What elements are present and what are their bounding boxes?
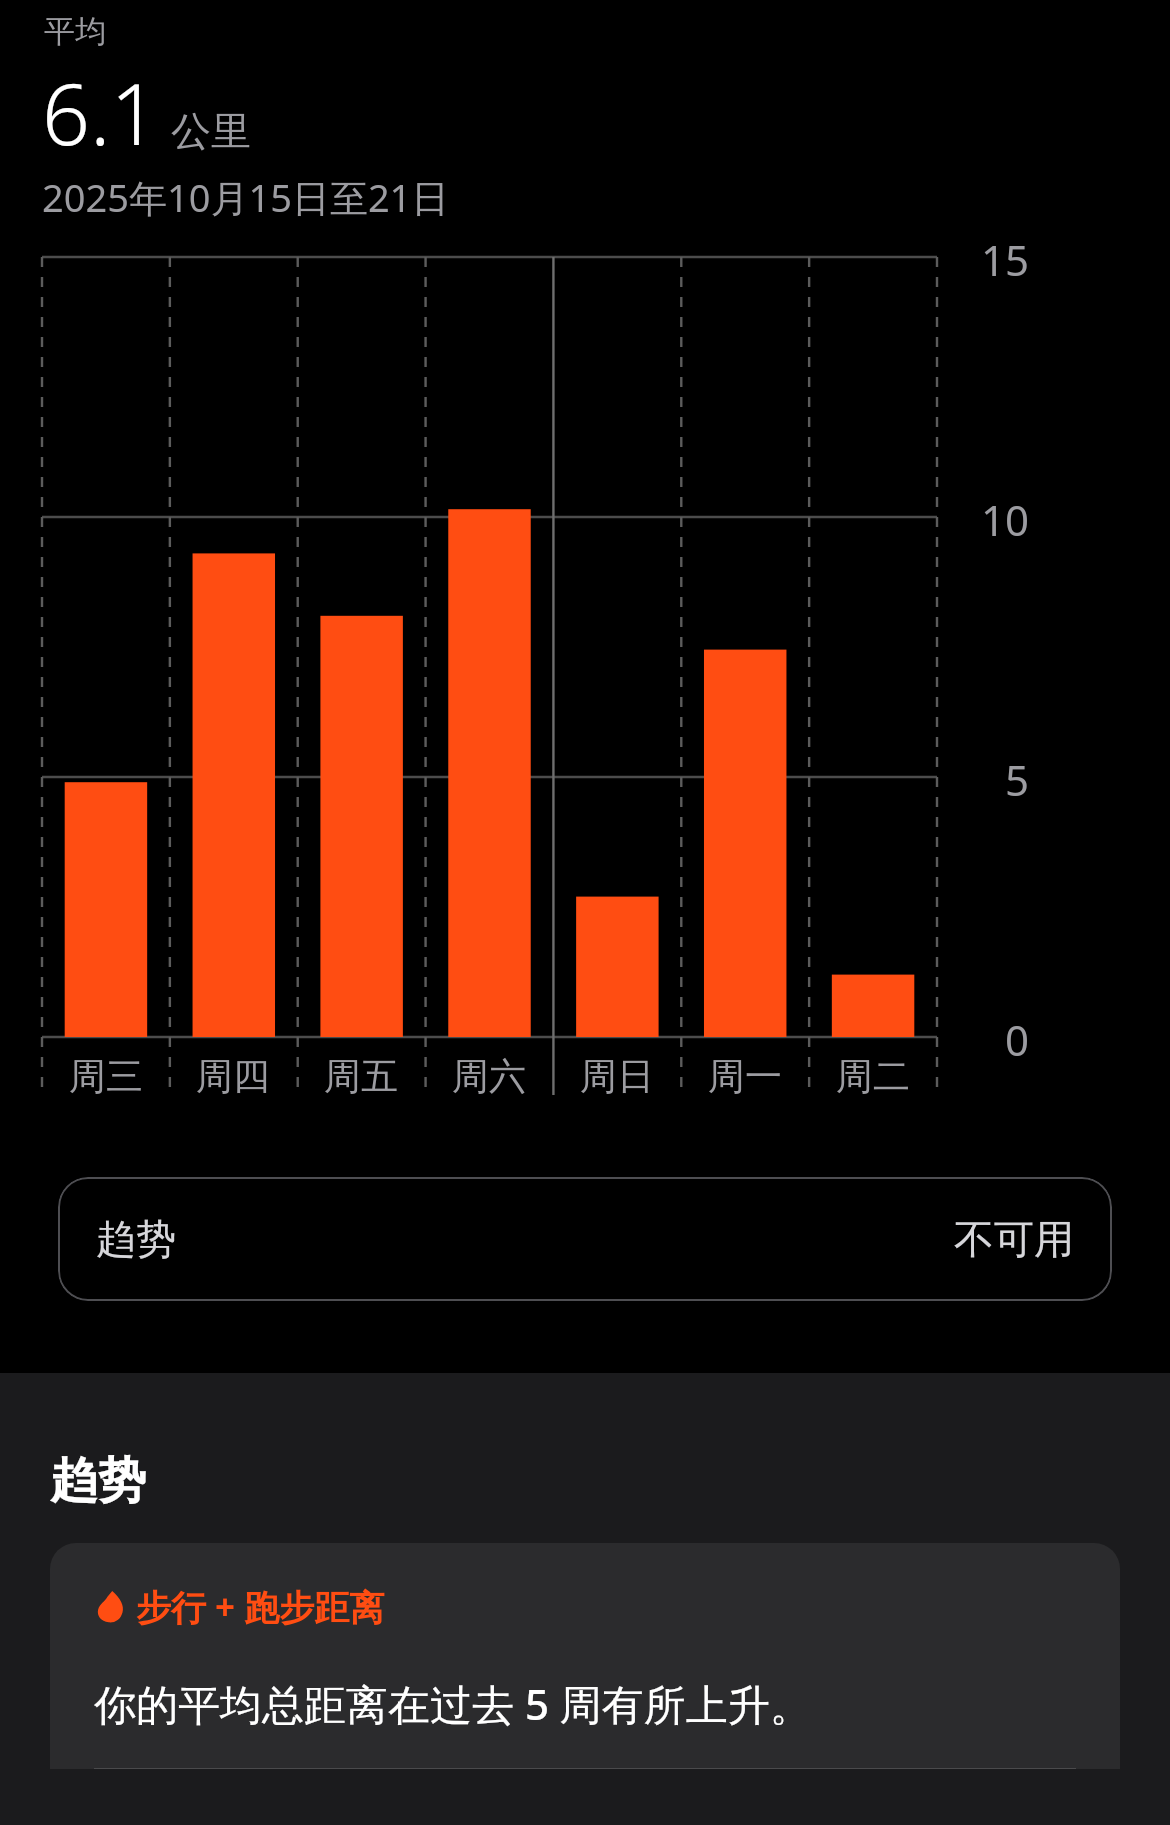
button[interactable]: Walking and running distance [50,1543,1120,1769]
other: Walking and running distance [94,1591,126,1623]
staticText: 平均 [44,12,106,51]
staticText: 2025年10月15日至21日 [42,171,450,223]
staticText: 趋势 [50,1451,146,1511]
button[interactable]: 趋势 [58,1177,1112,1301]
staticText: 0 [1005,1011,1030,1068]
staticText: 步行 + 跑步距离 [136,1583,385,1631]
staticText: 周五 [324,1053,398,1100]
staticText: 不可用 [954,1214,1074,1264]
staticText: 周一 [708,1053,782,1100]
staticText: 公里 [171,106,251,156]
staticText: 周二 [836,1053,910,1100]
staticText: 5 [1005,751,1030,808]
staticText: 你的平均总距离在过去 5 周有所上升。 [94,1675,812,1732]
staticText: 周六 [452,1053,526,1100]
staticText: 周四 [196,1053,270,1100]
staticText: 趋势 [96,1214,176,1264]
staticText: 周三 [69,1053,143,1100]
staticText: 15 [981,231,1030,288]
staticText: 6.1 [42,55,159,169]
staticText: 周日 [580,1053,654,1100]
staticText: 10 [981,491,1030,548]
